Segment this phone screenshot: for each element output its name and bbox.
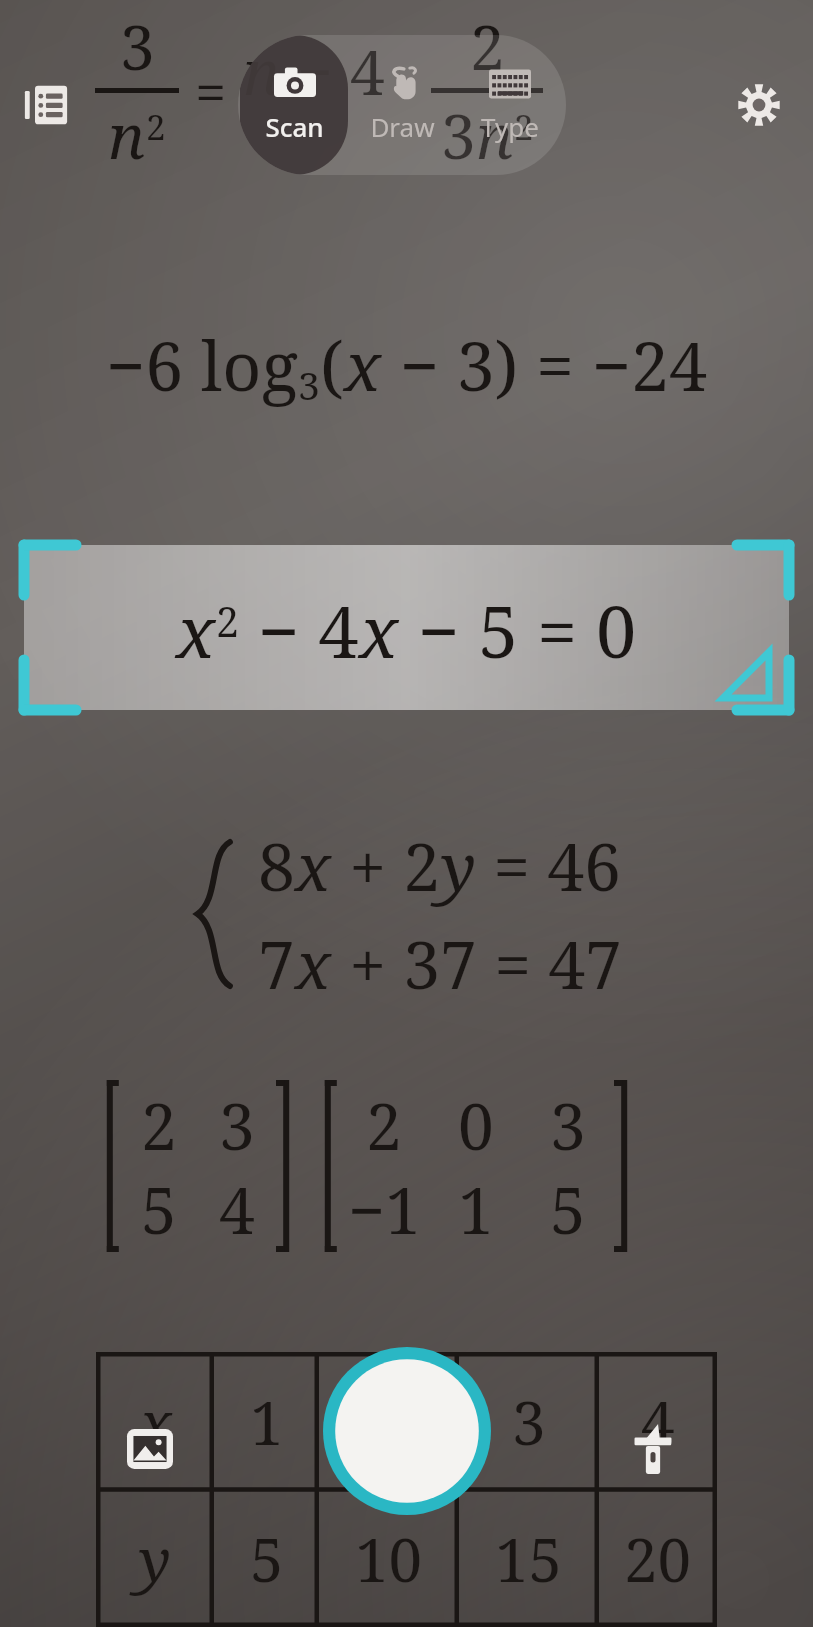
staticText: x [359, 581, 399, 679]
staticText: 4 [350, 29, 385, 113]
staticText: 1 [458, 1166, 494, 1250]
staticText: + 37 = 47 [332, 918, 623, 1008]
staticText: 10 [355, 1518, 423, 1600]
staticText: 3 [441, 93, 476, 177]
staticText: x [295, 820, 332, 910]
staticText: x [344, 318, 382, 411]
button[interactable]: Scan [240, 35, 348, 175]
staticText: n [108, 93, 146, 177]
staticText: 5 [550, 1166, 586, 1250]
staticText: Type [481, 109, 539, 144]
staticText: + 2 [332, 820, 441, 910]
staticText: Draw [370, 109, 435, 144]
staticText: y [441, 820, 476, 910]
button[interactable]: Shutter [321, 1345, 493, 1517]
staticText: 5 [141, 1166, 177, 1250]
staticText: 2 [146, 103, 166, 151]
staticText: 0 [458, 1082, 494, 1166]
staticText: 20 [624, 1518, 692, 1600]
staticText: − [281, 29, 350, 113]
button[interactable]: Type [456, 35, 564, 175]
staticText: = [195, 53, 227, 129]
staticText: 4 [641, 1381, 675, 1463]
staticText: 2 [470, 4, 505, 88]
staticText: −6 log [106, 318, 298, 411]
staticText: 15 [495, 1518, 563, 1600]
staticText: 7 [258, 918, 295, 1008]
button[interactable]: Settings [721, 67, 797, 143]
staticText: 3 [120, 4, 155, 88]
staticText: 5 [250, 1518, 284, 1600]
staticText: 2 [366, 1082, 402, 1166]
button[interactable]: Draw [348, 35, 456, 175]
staticText: 3 [512, 1381, 546, 1463]
staticText: − 5 = 0 [399, 581, 637, 679]
staticText: x [139, 1381, 172, 1463]
staticText: 4 [219, 1166, 255, 1250]
staticText: 8 [258, 820, 295, 910]
staticText: 3 [550, 1082, 586, 1166]
staticText: − 3) = −24 [382, 318, 708, 411]
staticText: −1 [348, 1166, 421, 1250]
staticText: − 4 [239, 581, 359, 679]
staticText: 3 [298, 358, 320, 411]
button[interactable]: Open gallery [112, 1411, 188, 1487]
staticText: = 46 [476, 820, 622, 910]
staticText: x [176, 581, 216, 679]
staticText: n [476, 93, 514, 177]
staticText: Scan [265, 109, 324, 144]
staticText: 1 [250, 1381, 284, 1463]
button[interactable]: History [8, 67, 84, 143]
staticText: ( [320, 318, 344, 411]
staticText: n [243, 29, 281, 113]
staticText: y [139, 1518, 171, 1600]
button[interactable]: Flashlight [615, 1411, 691, 1487]
staticText: 3 [219, 1082, 255, 1166]
staticText: 2 [141, 1082, 177, 1166]
staticText: x [295, 918, 332, 1008]
staticText: 2 [514, 103, 534, 151]
staticText: 2 [216, 593, 239, 649]
